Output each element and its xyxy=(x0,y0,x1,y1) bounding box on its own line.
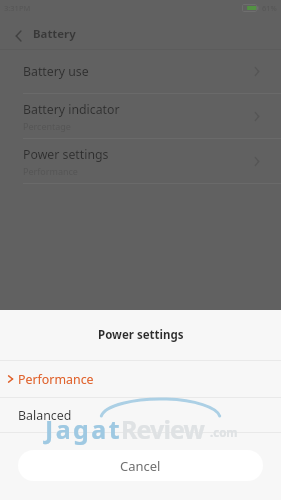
button[interactable]: Cancel xyxy=(18,450,263,481)
staticText: Percentage xyxy=(23,120,71,132)
button[interactable]: Battery use xyxy=(0,50,281,93)
staticText: Battery use xyxy=(23,63,89,80)
staticText: Review xyxy=(121,412,205,446)
button[interactable]: Back xyxy=(0,16,33,49)
staticText: Power settings xyxy=(98,327,184,343)
button[interactable]: Battery indicator xyxy=(0,94,281,138)
button[interactable]: Performance xyxy=(0,361,281,397)
button[interactable]: Power settings xyxy=(0,139,281,183)
staticText: Performance xyxy=(23,165,78,177)
staticText: Balanced xyxy=(18,407,72,424)
button[interactable]: Balanced xyxy=(0,398,281,432)
staticText: .com xyxy=(210,425,238,441)
staticText: Cancel xyxy=(120,457,161,475)
staticText: Performance xyxy=(18,371,94,388)
staticText: Jagat xyxy=(45,412,122,446)
staticText: Battery xyxy=(33,26,76,42)
staticText: Battery indicator xyxy=(23,101,120,118)
staticText: Power settings xyxy=(23,146,109,163)
